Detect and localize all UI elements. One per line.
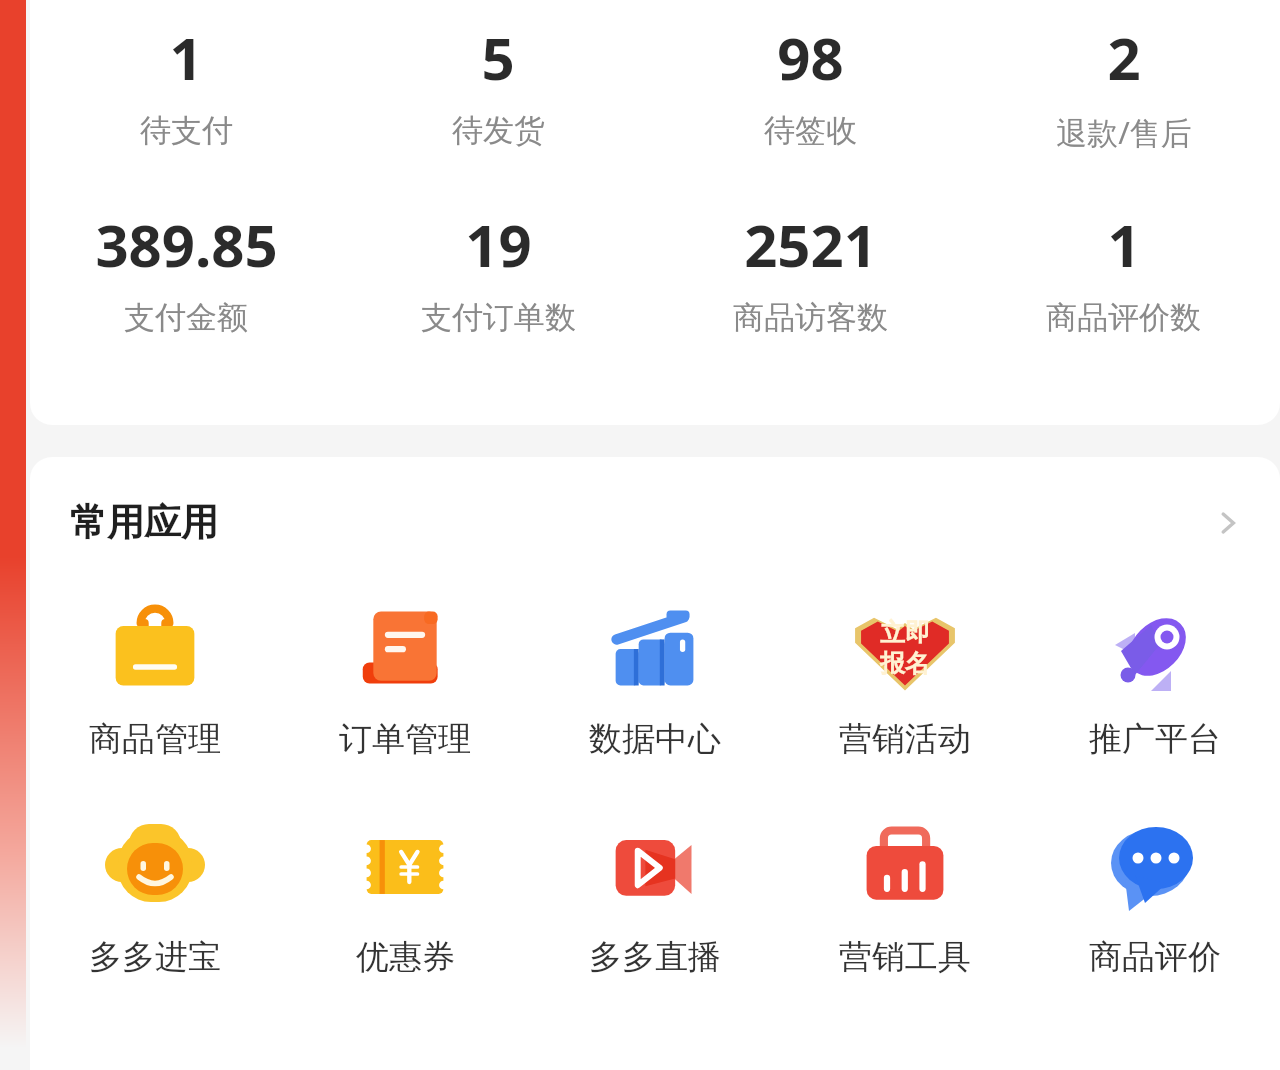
button[interactable]: 5	[342, 18, 654, 150]
staticText: 报名	[880, 648, 930, 679]
staticText: 商品访客数	[733, 298, 888, 337]
staticText: 商品评价	[1089, 936, 1221, 978]
staticText: 商品管理	[89, 718, 221, 760]
button[interactable]: 389.85	[30, 205, 342, 337]
staticText: 支付订单数	[421, 298, 576, 337]
staticText: 推广平台	[1089, 718, 1221, 760]
button[interactable]: 数据中心	[530, 594, 780, 760]
staticText: 2521	[744, 205, 877, 284]
button[interactable]: 1	[30, 18, 342, 150]
staticText: 5	[481, 18, 515, 97]
button[interactable]: 98	[654, 18, 967, 150]
button[interactable]: 多多进宝	[30, 812, 280, 978]
staticText: 订单管理	[339, 718, 471, 760]
button[interactable]: 常用应用	[30, 499, 1280, 546]
staticText: 389.85	[95, 205, 278, 284]
staticText: 待发货	[452, 111, 545, 150]
staticText: 待支付	[140, 111, 233, 150]
staticText: 支付金额	[124, 298, 248, 337]
button[interactable]: 立即	[780, 594, 1030, 760]
staticText: 1	[169, 18, 203, 97]
button[interactable]: 多多直播	[530, 812, 780, 978]
button[interactable]: 1	[967, 205, 1280, 337]
staticText: 多多直播	[589, 936, 721, 978]
button[interactable]: 推广平台	[1030, 594, 1280, 760]
staticText: 多多进宝	[89, 936, 221, 978]
staticText: 退款/售后	[1056, 111, 1192, 153]
button[interactable]: 订单管理	[280, 594, 530, 760]
other: 更多常用应用	[1206, 501, 1250, 545]
button[interactable]: 19	[342, 205, 654, 337]
button[interactable]: 2	[967, 18, 1280, 153]
staticText: 商品评价数	[1046, 298, 1201, 337]
staticText: 优惠券	[356, 936, 455, 978]
staticText: 数据中心	[589, 718, 721, 760]
staticText: 常用应用	[70, 499, 218, 546]
staticText: 待签收	[764, 111, 857, 150]
staticText: 2	[1107, 18, 1141, 97]
button[interactable]: 商品管理	[30, 594, 280, 760]
staticText: 立即	[880, 617, 930, 648]
button[interactable]: 2521	[654, 205, 967, 337]
staticText: 营销工具	[839, 936, 971, 978]
button[interactable]: 营销工具	[780, 812, 1030, 978]
staticText: 19	[465, 205, 532, 284]
staticText: 营销活动	[839, 718, 971, 760]
staticText: 1	[1107, 205, 1141, 284]
button[interactable]: 优惠券	[280, 812, 530, 978]
button[interactable]: 商品评价	[1030, 812, 1280, 978]
staticText: 98	[777, 18, 844, 97]
